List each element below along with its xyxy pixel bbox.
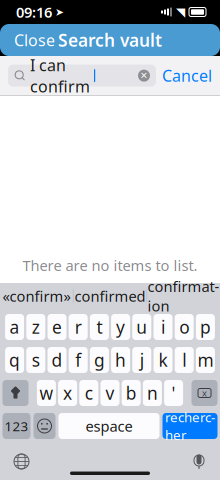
button[interactable]: f	[69, 347, 88, 373]
staticText: g	[94, 348, 105, 371]
button[interactable]: Delete	[191, 380, 217, 406]
staticText: y	[116, 315, 125, 338]
button[interactable]: «confirm»	[0, 283, 73, 309]
button[interactable]: Emoji	[33, 413, 55, 439]
button[interactable]: s	[26, 347, 45, 373]
staticText: c	[85, 381, 93, 404]
button[interactable]: Shift	[2, 380, 28, 406]
staticText: x	[202, 387, 207, 399]
button[interactable]: u	[132, 314, 151, 340]
button[interactable]: b	[122, 380, 141, 406]
staticText: 123	[4, 417, 28, 435]
button[interactable]: d	[47, 347, 66, 373]
staticText: b	[126, 381, 137, 404]
button[interactable]: o	[175, 314, 194, 340]
button[interactable]: 123	[2, 413, 30, 439]
staticText: Search vault	[58, 28, 162, 51]
staticText: o	[179, 315, 189, 338]
button[interactable]: confirmation	[147, 283, 220, 309]
staticText: I can confirm	[30, 54, 90, 97]
staticText: k	[158, 348, 167, 371]
staticText: d	[51, 348, 62, 371]
staticText: Close	[14, 29, 55, 51]
staticText: i	[161, 315, 165, 338]
staticText: v	[105, 381, 114, 404]
staticText: u	[136, 315, 147, 338]
staticText: p	[200, 315, 211, 338]
button[interactable]: a	[5, 314, 24, 340]
staticText: l	[182, 348, 186, 371]
button[interactable]: g	[90, 347, 109, 373]
staticText: a	[10, 315, 20, 338]
button[interactable]: '	[164, 380, 183, 406]
staticText: n	[147, 381, 158, 404]
staticText: m	[197, 348, 213, 371]
button[interactable]: x	[58, 380, 77, 406]
button[interactable]: j	[132, 347, 151, 373]
button[interactable]: t	[90, 314, 109, 340]
staticText: confirmation	[148, 276, 220, 315]
staticText: espace	[85, 416, 132, 436]
button[interactable]: n	[143, 380, 162, 406]
staticText: ➤	[55, 6, 64, 18]
button[interactable]: confirmed	[74, 283, 146, 309]
button[interactable]: w	[37, 380, 56, 406]
button[interactable]: p	[196, 314, 215, 340]
button[interactable]: e	[47, 314, 66, 340]
button[interactable]: z	[26, 314, 45, 340]
staticText: 09:16	[16, 2, 52, 22]
button[interactable]: k	[153, 347, 172, 373]
staticText: q	[9, 348, 20, 371]
staticText: h	[115, 348, 126, 371]
button[interactable]: Cancel	[162, 61, 212, 90]
staticText: w	[39, 381, 53, 404]
staticText: ◥	[176, 5, 185, 19]
staticText: f	[75, 348, 81, 371]
button[interactable]: h	[111, 347, 130, 373]
button[interactable]: q	[5, 347, 24, 373]
button[interactable]: rechercher	[162, 413, 217, 439]
staticText: e	[52, 315, 62, 338]
button[interactable]: c	[79, 380, 98, 406]
button[interactable]: Close	[0, 23, 55, 57]
button[interactable]: r	[69, 314, 88, 340]
button[interactable]: Switch keyboard language	[0, 450, 29, 473]
staticText: Cancel	[162, 65, 212, 86]
staticText: t	[96, 315, 102, 338]
button[interactable]: Clear search text	[138, 70, 150, 82]
staticText: s	[32, 348, 40, 371]
button[interactable]: v	[100, 380, 119, 406]
staticText: ✕	[140, 70, 148, 81]
staticText: x	[63, 381, 72, 404]
button[interactable]: m	[196, 347, 215, 373]
staticText: '	[172, 381, 176, 404]
button[interactable]: l	[175, 347, 194, 373]
staticText: z	[32, 315, 40, 338]
button[interactable]: i	[153, 314, 172, 340]
staticText: rechercher	[165, 408, 215, 444]
button[interactable]: y	[111, 314, 130, 340]
staticText: r	[75, 315, 82, 338]
staticText: «confirm»	[2, 286, 70, 306]
button[interactable]: espace	[58, 413, 159, 439]
button[interactable]: Dictate	[192, 450, 220, 472]
staticText: j	[140, 348, 144, 371]
staticText: confirmed	[74, 286, 145, 306]
staticText: There are no items to list.	[22, 255, 197, 275]
